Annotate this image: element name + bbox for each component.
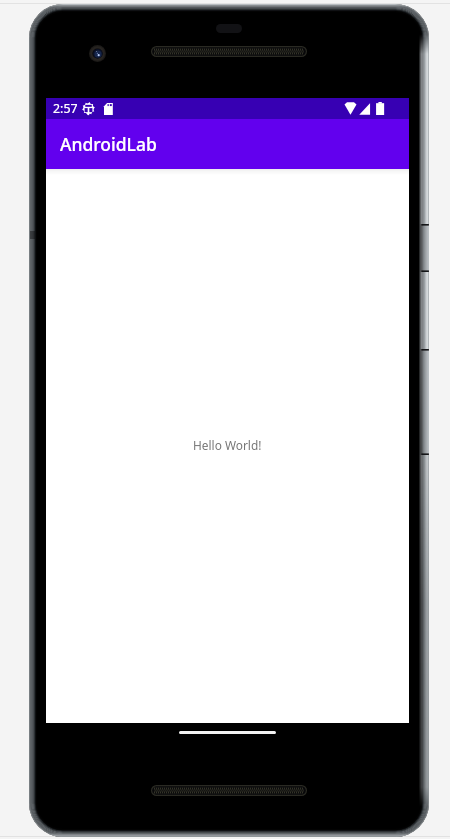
button[interactable]: AndroidLab — [46, 119, 409, 169]
staticText: AndroidLab — [60, 132, 157, 156]
staticText: Hello World! — [193, 437, 262, 453]
staticText: 2:57 — [53, 100, 78, 117]
